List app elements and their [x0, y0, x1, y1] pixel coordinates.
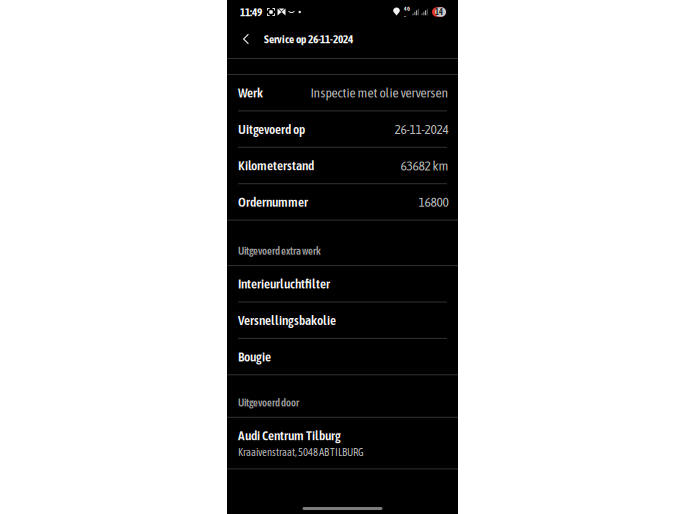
button[interactable]: Kilometerstand	[227, 148, 458, 183]
staticText: Inspectie met olie verversen	[310, 85, 448, 100]
staticText: 63682 km	[400, 158, 448, 173]
staticText: Ordernummer	[238, 194, 308, 210]
staticText: 14	[435, 7, 443, 17]
staticText: Kraaivenstraat, 5048 AB TILBURG	[238, 446, 364, 458]
staticText: Interieurluchtfilter	[238, 276, 330, 291]
staticText: Werk	[238, 85, 263, 100]
staticText: Kilometerstand	[238, 158, 314, 173]
button[interactable]: Interieurluchtfilter	[227, 266, 458, 301]
button[interactable]: Werk	[227, 75, 458, 110]
staticText: 11:49	[240, 5, 262, 18]
staticText: 16800	[418, 194, 448, 210]
staticText: 26-11-2024	[394, 121, 448, 137]
button[interactable]: Back	[234, 24, 258, 54]
button[interactable]: Bougie	[227, 339, 458, 374]
button[interactable]: Uitgevoerd op	[227, 111, 458, 147]
button[interactable]: Versnellingsbakolie	[227, 302, 458, 338]
button[interactable]: Ordernummer	[227, 184, 458, 220]
staticText: Uitgevoerd door	[238, 397, 299, 409]
staticText: Versnellingsbakolie	[238, 313, 336, 328]
staticText: ..	[404, 12, 406, 18]
staticText: Uitgevoerd op	[238, 121, 305, 137]
staticText: Uitgevoerd extra werk	[238, 245, 321, 257]
staticText: Bougie	[238, 349, 271, 364]
staticText: Service op 26-11-2024	[264, 32, 353, 45]
staticText: 4G	[404, 6, 410, 12]
button[interactable]: Audi Centrum Tilburg	[227, 418, 458, 468]
staticText: Audi Centrum Tilburg	[238, 428, 341, 443]
